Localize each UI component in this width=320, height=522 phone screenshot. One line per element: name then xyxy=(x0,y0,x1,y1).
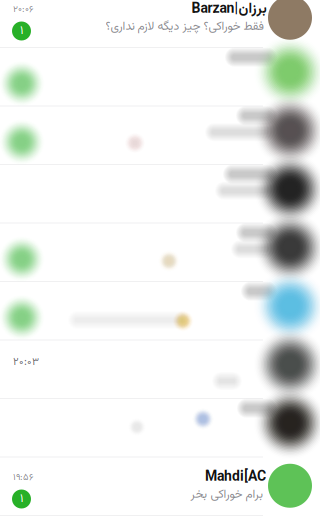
button[interactable] xyxy=(0,47,320,105)
staticText: برزان|Barzan xyxy=(191,0,266,20)
staticText: ۱ xyxy=(20,22,23,40)
staticText: فقط خوراکی؟ چیز دیگه لازم نداری؟ xyxy=(105,17,263,36)
button[interactable] xyxy=(0,339,320,398)
staticText: ۱ xyxy=(20,490,23,508)
button[interactable] xyxy=(0,398,320,456)
button[interactable] xyxy=(0,222,320,281)
button[interactable] xyxy=(0,105,320,164)
button[interactable] xyxy=(0,164,320,222)
button[interactable]: ۲۰:۰۶ xyxy=(0,0,320,47)
staticText: ۲۰:۰۳ xyxy=(13,354,39,371)
button[interactable]: ۱۹:۵۶ xyxy=(0,456,320,515)
staticText: ۱۹:۵۶ xyxy=(13,470,34,485)
staticText: برام خوراکی بخر xyxy=(190,485,263,504)
staticText: Mahdi[AC xyxy=(205,466,266,488)
button[interactable] xyxy=(0,281,320,339)
staticText: ۲۰:۰۶ xyxy=(13,2,34,17)
